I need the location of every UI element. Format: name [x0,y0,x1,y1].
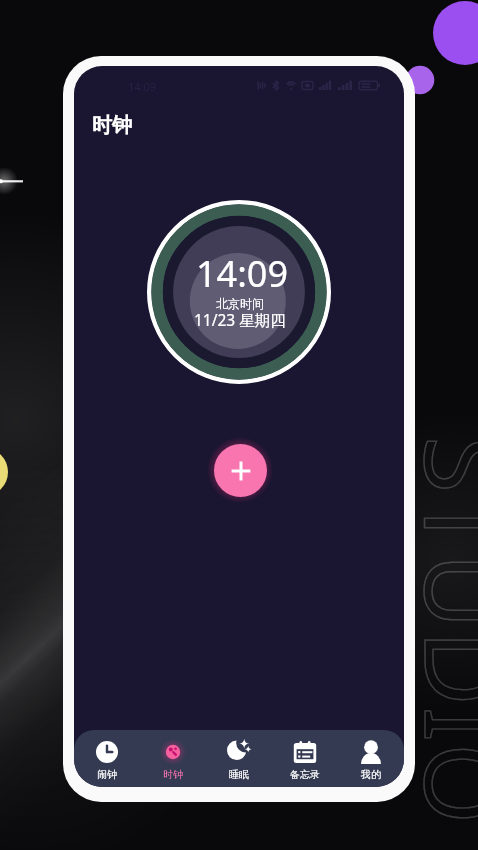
button[interactable]: 时钟 [140,730,206,781]
staticText: STUDIO [396,436,478,826]
button[interactable]: 我的 [338,730,404,781]
staticText: 时钟 [92,113,132,138]
staticText: 备忘录 [290,768,320,781]
staticText: 我的 [361,768,381,781]
button[interactable]: Add alarm [214,444,267,497]
button[interactable]: 睡眠 [206,730,272,781]
staticText: 14:09 [128,79,157,94]
staticText: 时钟 [163,768,183,781]
staticText: 北京时间 [216,296,264,311]
staticText: 11/23 星期四 [194,309,286,330]
staticText: 闹钟 [97,768,117,781]
staticText: 睡眠 [229,768,249,781]
staticText: 14:09 [196,249,289,298]
button[interactable]: 备忘录 [272,730,338,781]
button[interactable]: 闹钟 [74,730,140,781]
